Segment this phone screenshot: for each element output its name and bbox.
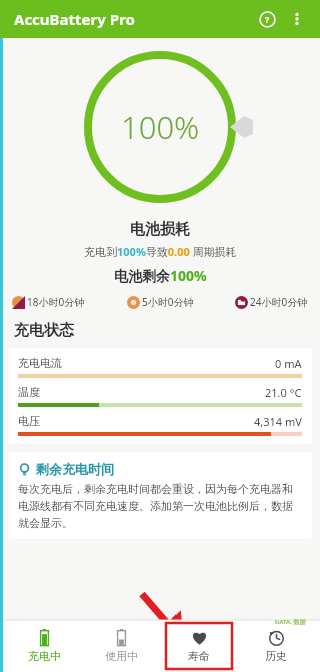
staticText: 5小时0分钟: [142, 295, 194, 309]
staticText: 0 mA: [275, 356, 302, 371]
button[interactable]: Help: [252, 4, 282, 34]
button[interactable]: 充电中: [11, 623, 77, 669]
staticText: 剩余充电时间: [36, 461, 114, 477]
staticText: 寿命: [188, 649, 210, 663]
staticText: 100%: [121, 106, 200, 148]
staticText: 充电中: [28, 649, 61, 663]
staticText: 18小时0分钟: [27, 295, 85, 309]
staticText: 4,314 mV: [254, 414, 302, 429]
staticText: 历史: [265, 649, 287, 663]
button[interactable]: 使用中: [88, 623, 154, 669]
button[interactable]: 历史: [243, 623, 309, 669]
staticText: 电池剩余100%: [114, 266, 207, 285]
button[interactable]: More options: [282, 4, 312, 34]
staticText: 电压: [18, 414, 40, 428]
button[interactable]: 充电电流: [8, 348, 312, 444]
staticText: 充电状态: [14, 321, 74, 340]
staticText: 充电到100%导致0.00 周期损耗: [84, 244, 237, 259]
staticText: 电池损耗: [130, 220, 190, 239]
staticText: 使用中: [105, 649, 138, 663]
staticText: 温度: [18, 385, 40, 399]
staticText: DATA, 数据: [275, 618, 306, 626]
staticText: 每次充电后，剩余充电时间都会重设，因为每个充电器和电源线都有不同充电速度。添加第…: [18, 482, 302, 530]
staticText: 充电电流: [18, 356, 62, 370]
staticText: AccuBattery Pro: [14, 9, 135, 29]
staticText: ?: [265, 13, 270, 25]
button[interactable]: 寿命: [166, 623, 232, 669]
button[interactable]: 剩余充电时间: [8, 452, 312, 539]
staticText: 21.0 °C: [265, 385, 302, 400]
staticText: 24小时0分钟: [250, 295, 308, 309]
